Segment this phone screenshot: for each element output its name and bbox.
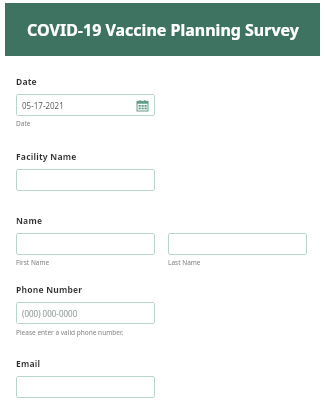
staticText: (000) 000-0000 [22, 308, 78, 319]
staticText: 05-17-2021 [22, 100, 64, 111]
staticText: Phone Number [16, 284, 83, 296]
staticText: Name [16, 215, 43, 227]
staticText: Last Name [168, 258, 201, 267]
button[interactable] [16, 376, 155, 398]
staticText: First Name [16, 258, 50, 267]
staticText: Please enter a valid phone number. [16, 328, 124, 337]
staticText: Date [16, 76, 37, 88]
button[interactable] [16, 169, 155, 191]
button[interactable]: (000) 000-0000 [16, 302, 155, 324]
staticText: Email [16, 358, 41, 370]
button[interactable] [16, 233, 155, 255]
button[interactable]: Pick date [136, 99, 149, 112]
staticText: Date [16, 119, 31, 128]
staticText: COVID-19 Vaccine Planning Survey [27, 19, 299, 41]
staticText: Facility Name [16, 151, 77, 163]
button[interactable] [168, 233, 307, 255]
button[interactable]: 05-17-2021 [16, 94, 155, 116]
